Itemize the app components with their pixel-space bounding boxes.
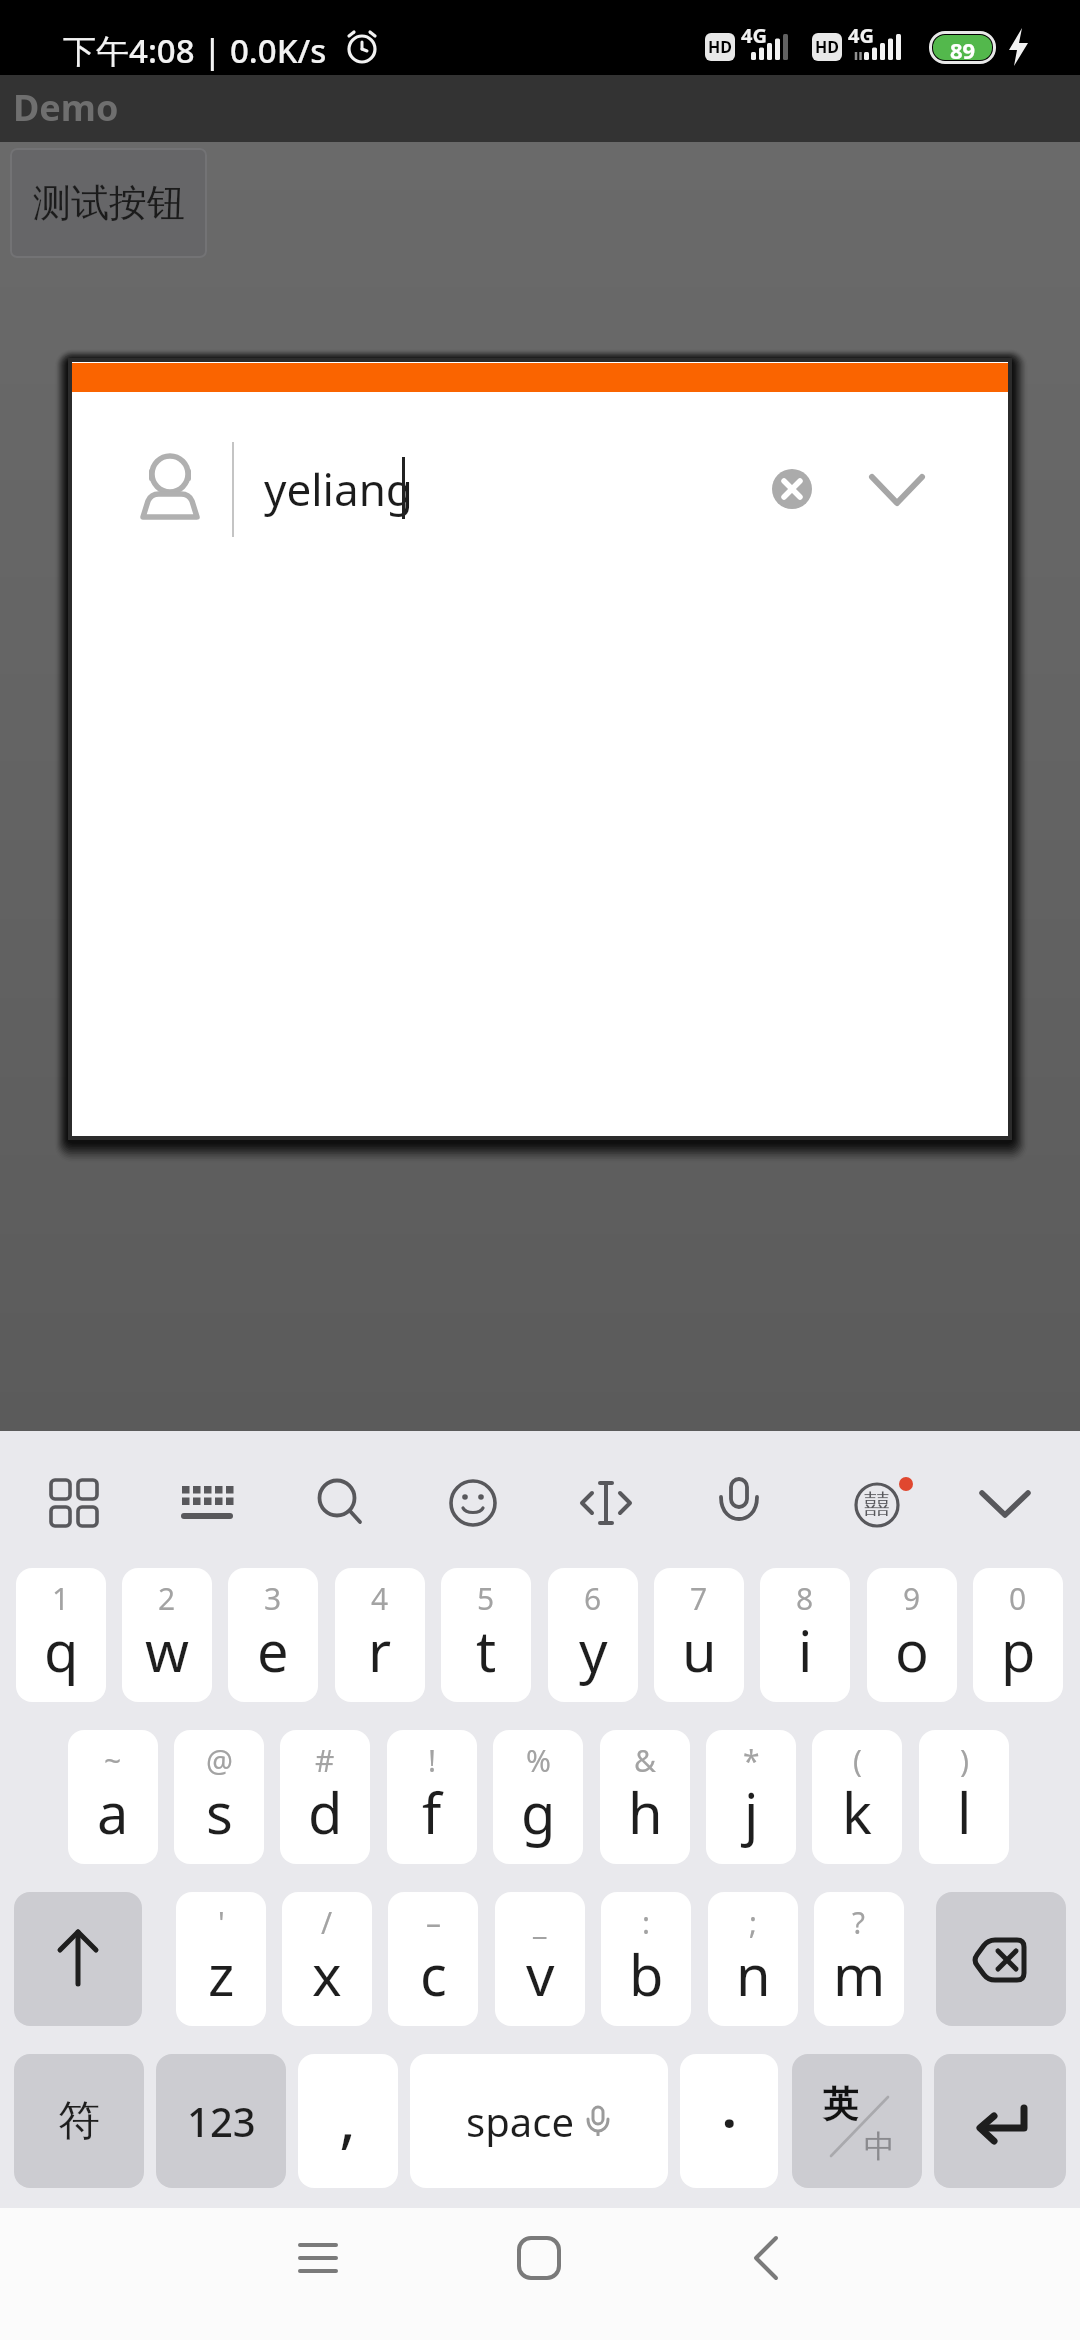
staticText: 1 <box>52 1578 70 1619</box>
button[interactable]: % <box>493 1730 583 1864</box>
button[interactable] <box>516 2222 562 2326</box>
staticText: u <box>682 1612 717 1688</box>
staticText: v <box>526 1936 555 2012</box>
staticText: 英 <box>823 2082 858 2126</box>
button[interactable] <box>934 2054 1066 2188</box>
button[interactable]: 123 <box>156 2054 286 2188</box>
staticText: d <box>308 1774 343 1850</box>
button[interactable]: # <box>280 1730 370 1864</box>
button[interactable]: 6 <box>548 1568 638 1702</box>
staticText: 2 <box>158 1578 176 1619</box>
button[interactable]: · <box>680 2054 778 2188</box>
button[interactable] <box>772 469 812 509</box>
button[interactable]: ; <box>708 1892 798 2026</box>
staticText: 9 <box>903 1578 921 1619</box>
button[interactable]: – <box>388 1892 478 2026</box>
button[interactable]: ? <box>814 1892 904 2026</box>
staticText: HD <box>815 36 839 58</box>
button[interactable]: 英 <box>792 2054 922 2188</box>
staticText: f <box>422 1774 442 1850</box>
staticText: 4G <box>848 22 874 49</box>
button[interactable]: _ <box>495 1892 585 2026</box>
staticText: x <box>312 1936 342 2012</box>
staticText: · <box>722 2086 737 2157</box>
staticText: & <box>634 1740 656 1781</box>
button[interactable]: 囍 <box>849 1475 905 1531</box>
button[interactable] <box>295 2222 341 2326</box>
staticText: Demo <box>13 83 119 132</box>
staticText: k <box>842 1774 872 1850</box>
button[interactable]: * <box>706 1730 796 1864</box>
staticText: a <box>97 1774 129 1850</box>
staticText: 3 <box>264 1578 282 1619</box>
button[interactable]: 4 <box>335 1568 425 1702</box>
button[interactable]: , <box>298 2054 398 2188</box>
button[interactable]: ~ <box>68 1730 158 1864</box>
staticText: 89 <box>950 35 976 60</box>
button[interactable]: @ <box>174 1730 264 1864</box>
staticText: p <box>1001 1612 1036 1688</box>
button[interactable]: 0 <box>973 1568 1063 1702</box>
button[interactable] <box>744 2222 790 2326</box>
button[interactable]: 1 <box>16 1568 106 1702</box>
button[interactable] <box>578 1475 634 1531</box>
staticText: 下午4:08 | 0.0K/s <box>63 28 327 73</box>
button[interactable]: ( <box>812 1730 902 1864</box>
button[interactable]: space <box>410 2054 668 2188</box>
button[interactable]: & <box>600 1730 690 1864</box>
staticText: 符 <box>58 2095 100 2148</box>
staticText: y <box>579 1612 608 1688</box>
button[interactable] <box>14 1892 142 2026</box>
staticText: t <box>476 1612 497 1688</box>
button[interactable] <box>862 463 932 515</box>
staticText: 中 <box>864 2127 895 2166</box>
staticText: ' <box>218 1902 225 1943</box>
staticText: ~ <box>104 1740 122 1781</box>
button[interactable]: ' <box>176 1892 266 2026</box>
staticText: ; <box>749 1902 758 1943</box>
button[interactable]: 7 <box>654 1568 744 1702</box>
button[interactable]: : <box>601 1892 691 2026</box>
button[interactable] <box>312 1475 368 1531</box>
staticText: z <box>208 1936 235 2012</box>
button[interactable]: 3 <box>228 1568 318 1702</box>
button[interactable]: 8 <box>760 1568 850 1702</box>
button[interactable]: 2 <box>122 1568 212 1702</box>
staticText: r <box>368 1612 392 1688</box>
staticText: # <box>315 1740 335 1781</box>
staticText: @ <box>206 1740 233 1781</box>
button[interactable]: ) <box>919 1730 1009 1864</box>
staticText: 0 <box>1009 1578 1027 1619</box>
staticText: 囍 <box>864 1488 890 1521</box>
staticText: * <box>743 1740 760 1781</box>
staticText: e <box>257 1612 289 1688</box>
staticText: g <box>521 1774 556 1850</box>
staticText: 4G <box>741 22 767 49</box>
staticText: 测试按钮 <box>33 179 185 227</box>
staticText: 8 <box>796 1578 814 1619</box>
staticText: 123 <box>187 2094 256 2148</box>
staticText: c <box>420 1936 447 2012</box>
button[interactable]: ! <box>387 1730 477 1864</box>
staticText: % <box>526 1740 551 1781</box>
staticText: n <box>736 1936 771 2012</box>
button[interactable] <box>445 1475 501 1531</box>
staticText: yeliang <box>264 459 413 519</box>
button[interactable]: / <box>282 1892 372 2026</box>
staticText: ) <box>960 1740 969 1781</box>
button[interactable] <box>179 1475 235 1531</box>
button[interactable]: 9 <box>867 1568 957 1702</box>
staticText: space <box>466 2094 574 2148</box>
button[interactable] <box>711 1475 767 1531</box>
staticText: w <box>145 1612 190 1688</box>
staticText: q <box>44 1612 79 1688</box>
button[interactable]: 测试按钮 <box>10 148 207 258</box>
button[interactable]: 5 <box>441 1568 531 1702</box>
staticText: / <box>321 1902 333 1943</box>
button[interactable] <box>936 1892 1066 2026</box>
button[interactable] <box>977 1475 1033 1531</box>
button[interactable]: 符 <box>14 2054 144 2188</box>
staticText: s <box>206 1774 233 1850</box>
button[interactable] <box>46 1475 102 1531</box>
staticText: i <box>798 1612 813 1688</box>
